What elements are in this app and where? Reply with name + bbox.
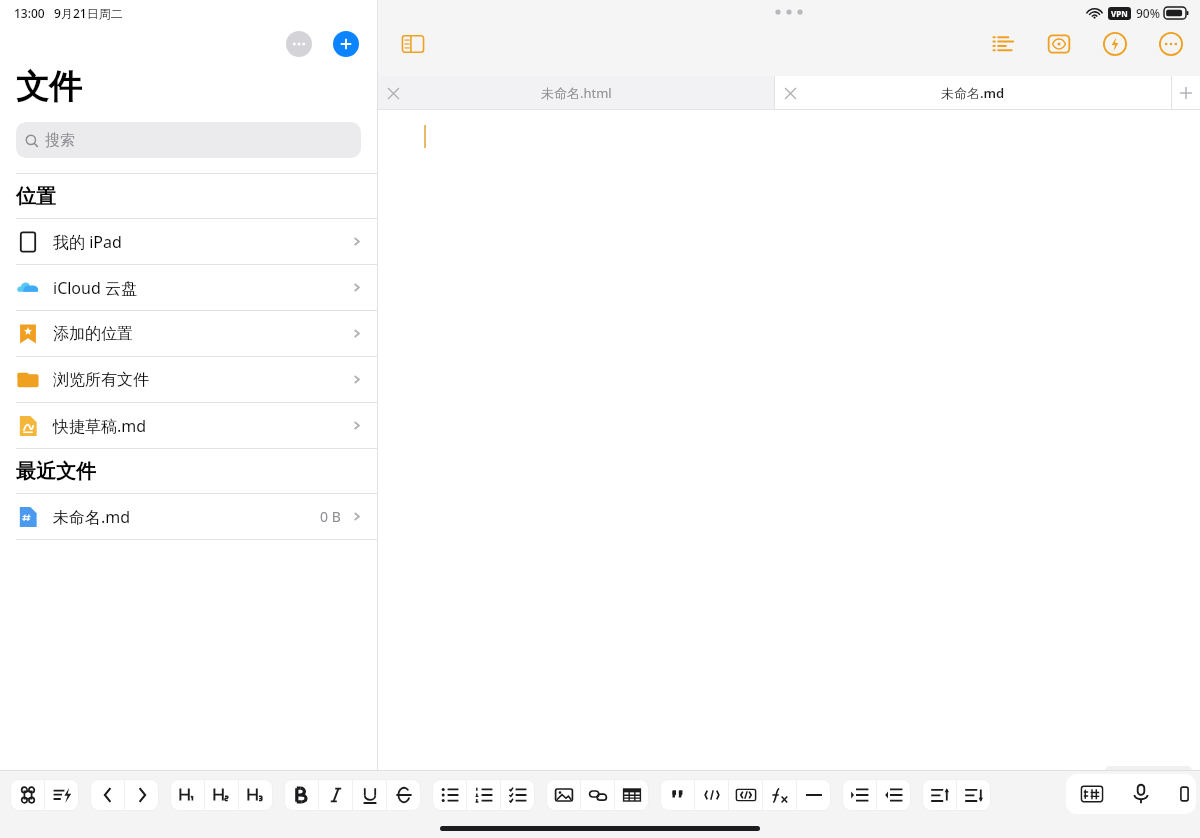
button[interactable]: Next xyxy=(125,780,158,810)
staticText: Ln 1, Col 1 xyxy=(1112,769,1185,784)
button[interactable]: 我的 iPad xyxy=(0,219,377,264)
button[interactable]: iCloud 云盘 xyxy=(0,265,377,310)
button[interactable]: Code block xyxy=(729,780,762,810)
button[interactable]: Formula xyxy=(763,780,796,810)
button[interactable]: 添加的位置 xyxy=(0,311,377,356)
staticText: 90% xyxy=(1136,5,1160,21)
button[interactable]: Task list xyxy=(501,780,534,810)
button[interactable]: More options xyxy=(286,31,312,57)
button[interactable]: Underline xyxy=(353,780,386,810)
button[interactable]: Bullet list xyxy=(433,780,466,810)
staticText: 最近文件 xyxy=(16,459,96,484)
button[interactable]: Outline xyxy=(988,29,1018,59)
button[interactable]: 未命名.html xyxy=(378,76,774,109)
button[interactable]: Command xyxy=(11,780,44,810)
button[interactable]: Quote xyxy=(661,780,694,810)
button[interactable]: Strikethrough xyxy=(387,780,420,810)
staticText: 浏览所有文件 xyxy=(53,370,149,390)
button[interactable]: Heading 1 xyxy=(171,780,204,810)
staticText: 文件 xyxy=(16,66,82,108)
button[interactable]: Link xyxy=(581,780,614,810)
button[interactable]: Italic xyxy=(319,780,352,810)
button[interactable]: Numbered list xyxy=(467,780,500,810)
button[interactable]: Dictation xyxy=(1124,779,1158,809)
button[interactable]: Previous xyxy=(91,780,124,810)
button[interactable]: Move down xyxy=(957,780,990,810)
button[interactable]: Actions xyxy=(1100,29,1130,59)
button[interactable]: 浏览所有文件 xyxy=(0,357,377,402)
staticText: 位置 xyxy=(16,184,56,209)
button[interactable]: 未命名.md xyxy=(775,76,1171,109)
button[interactable]: Inline code xyxy=(695,780,728,810)
button[interactable]: New tab xyxy=(1172,76,1200,109)
button[interactable]: Pinyin input xyxy=(1072,779,1112,809)
staticText: 13:00 9月21日周二 xyxy=(14,5,123,21)
button[interactable]: Toggle sidebar xyxy=(398,29,428,59)
button[interactable]: Bold xyxy=(285,780,318,810)
button[interactable]: Divider xyxy=(797,780,830,810)
button[interactable]: Outdent xyxy=(877,780,910,810)
staticText: 0 B xyxy=(320,507,341,526)
button[interactable]: Preview xyxy=(1044,29,1074,59)
staticText: 未命名.html xyxy=(541,84,612,102)
button[interactable]: Add xyxy=(333,31,359,57)
button[interactable]: 搜索 xyxy=(16,122,361,158)
staticText: 未命名.md xyxy=(941,84,1005,102)
button[interactable]: Table xyxy=(615,780,648,810)
button[interactable]: Close tab xyxy=(384,84,402,102)
button[interactable]: Heading 3 xyxy=(239,780,272,810)
staticText: iCloud 云盘 xyxy=(53,277,137,299)
staticText: 快捷草稿.md xyxy=(53,415,147,437)
staticText: 搜索 xyxy=(45,131,75,150)
staticText: 我的 iPad xyxy=(53,231,122,253)
staticText: VPN xyxy=(1111,8,1128,19)
button[interactable]: Hide keyboard xyxy=(1170,779,1190,809)
button[interactable]: Snippets xyxy=(45,780,78,810)
button[interactable]: 未命名.md xyxy=(0,494,377,539)
staticText: 添加的位置 xyxy=(53,324,133,344)
button[interactable]: Image xyxy=(547,780,580,810)
button[interactable]: Close tab xyxy=(781,84,799,102)
button[interactable]: Move up xyxy=(923,780,956,810)
staticText: 未命名.md xyxy=(53,506,131,528)
button[interactable]: 快捷草稿.md xyxy=(0,403,377,448)
button[interactable]: More xyxy=(1156,29,1186,59)
button[interactable]: Indent xyxy=(843,780,876,810)
button[interactable]: Heading 2 xyxy=(205,780,238,810)
